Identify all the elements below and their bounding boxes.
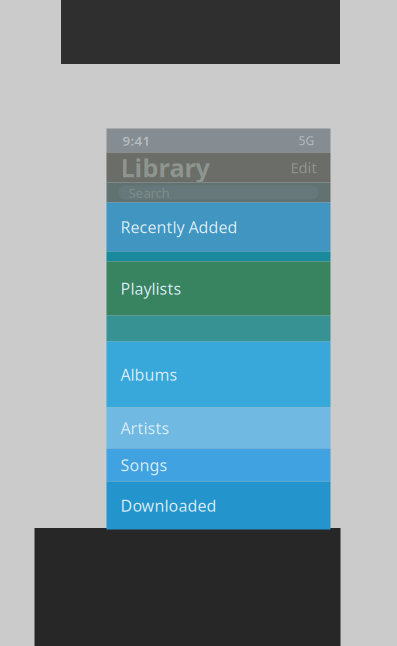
staticText: Edit <box>290 158 316 177</box>
button[interactable]: Recently Added <box>106 202 330 251</box>
staticText: Albums <box>120 364 177 385</box>
staticText: Downloaded <box>120 495 216 516</box>
button[interactable]: Playlists <box>106 261 330 315</box>
staticText: Songs <box>120 454 167 476</box>
staticText: Library <box>120 151 209 184</box>
button[interactable]: Edit <box>290 152 330 182</box>
staticText: Playlists <box>120 278 181 299</box>
staticText: 9:41 <box>122 132 150 149</box>
button[interactable]: Songs <box>106 448 330 481</box>
button[interactable]: Downloaded <box>106 481 330 529</box>
staticText: Recently Added <box>120 216 237 238</box>
button[interactable] <box>106 315 330 341</box>
button[interactable]: Library <box>106 152 209 182</box>
button[interactable]: Search <box>118 185 318 199</box>
button[interactable] <box>106 251 330 261</box>
staticText: Artists <box>120 417 169 439</box>
button[interactable]: Albums <box>106 341 330 407</box>
staticText: Search <box>128 184 169 201</box>
button[interactable]: Artists <box>106 407 330 448</box>
staticText: 5G <box>298 132 314 148</box>
